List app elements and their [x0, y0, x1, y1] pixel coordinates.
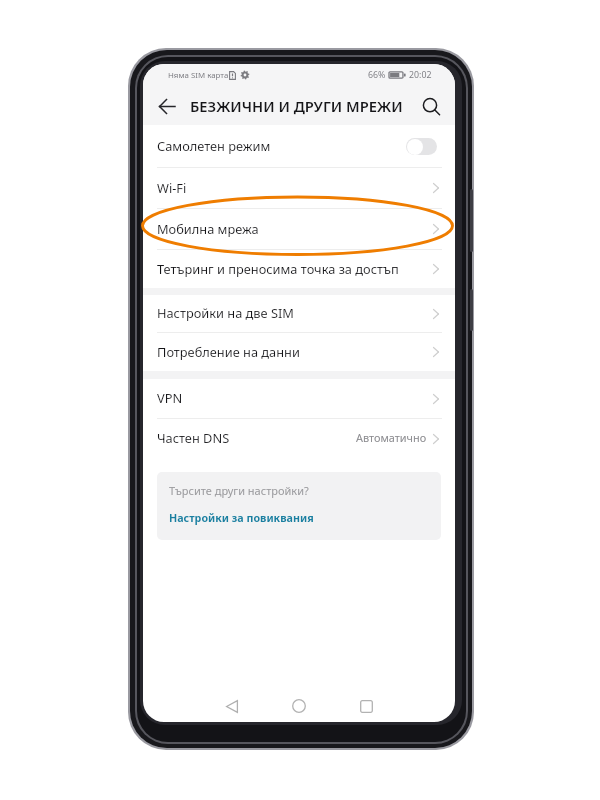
- staticText: Частен DNS: [157, 429, 230, 446]
- staticText: БЕЗЖИЧНИ И ДРУГИ МРЕЖИ: [190, 96, 403, 116]
- button[interactable]: Back: [151, 90, 183, 122]
- button[interactable]: Home: [282, 689, 316, 722]
- staticText: VPN: [157, 389, 183, 406]
- button[interactable]: Частен DNS: [143, 419, 455, 458]
- button[interactable]: Back: [215, 689, 249, 722]
- button[interactable]: Самолетен режим: [143, 125, 455, 167]
- staticText: Автоматично: [356, 430, 427, 445]
- staticText: Самолетен режим: [157, 137, 271, 154]
- staticText: Няма SIM карта: [168, 70, 229, 81]
- staticText: 66%: [368, 69, 386, 81]
- button[interactable]: Настройки на две SIM: [143, 295, 455, 332]
- button[interactable]: Търсите други настройки?: [157, 472, 441, 540]
- button[interactable]: Recents: [349, 689, 383, 722]
- button[interactable]: Wi-Fi: [143, 168, 455, 208]
- button[interactable]: Тетъринг и преносима точка за достъп: [143, 250, 455, 288]
- staticText: Търсите други настройки?: [169, 483, 309, 498]
- button[interactable]: Мобилна мрежа: [143, 209, 455, 249]
- staticText: Настройки на две SIM: [157, 304, 294, 321]
- staticText: Тетъринг и преносима точка за достъп: [157, 260, 399, 277]
- staticText: 20:02: [409, 69, 432, 81]
- staticText: Настройки за повиквания: [169, 511, 314, 526]
- staticText: Мобилна мрежа: [157, 220, 259, 237]
- button[interactable]: Search: [415, 90, 447, 122]
- button[interactable]: VPN: [143, 379, 455, 418]
- staticText: Потребление на данни: [157, 343, 300, 360]
- button[interactable]: Потребление на данни: [143, 333, 455, 371]
- staticText: Wi-Fi: [157, 179, 187, 196]
